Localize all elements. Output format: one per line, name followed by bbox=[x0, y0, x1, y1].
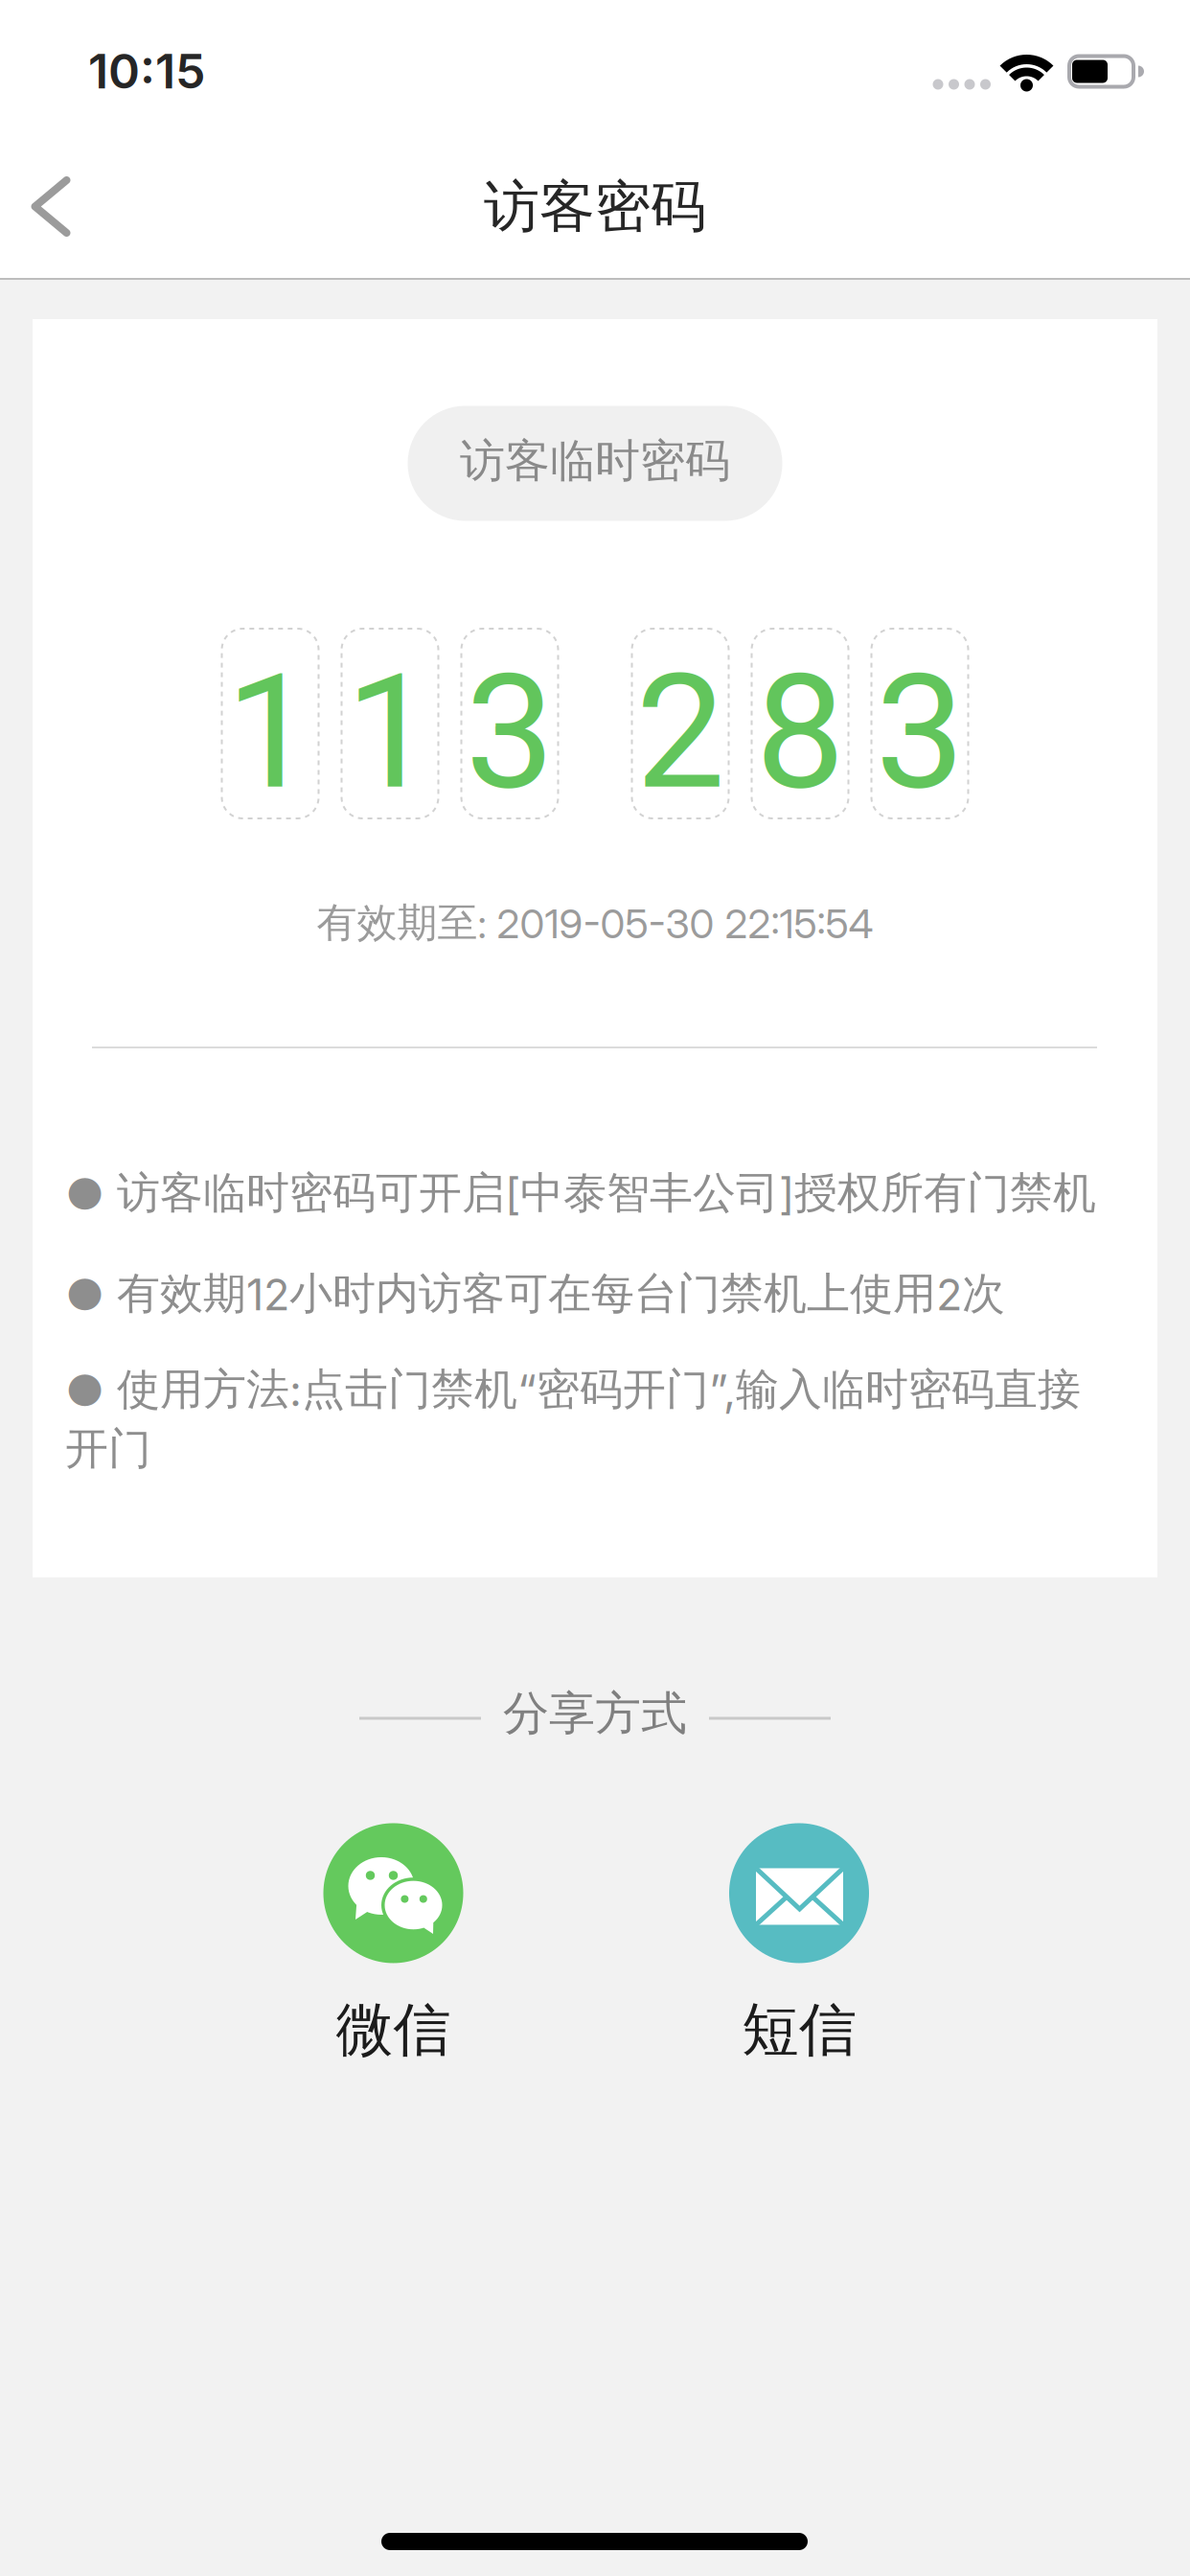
staticText: ● 使用方法:点击门禁机“密码开门”,输入临时密码直接 bbox=[65, 1362, 1081, 1417]
staticText: 3 bbox=[875, 639, 964, 825]
staticText: 有效期至: 2019-05-30 22:15:54 bbox=[317, 897, 873, 948]
staticText: 2 bbox=[636, 639, 725, 825]
staticText: 访客临时密码 bbox=[460, 433, 730, 489]
staticText: 开门 bbox=[65, 1422, 151, 1476]
staticText: 8 bbox=[755, 639, 845, 825]
staticText: ● 访客临时密码可开启[中泰智丰公司]授权所有门禁机 bbox=[65, 1166, 1096, 1220]
staticText: 短信 bbox=[742, 1994, 857, 2066]
button[interactable]: 短信 bbox=[729, 1823, 870, 2066]
button[interactable]: Back bbox=[22, 172, 98, 241]
staticText: 3 bbox=[465, 639, 554, 825]
staticText: 分享方式 bbox=[503, 1685, 687, 1743]
staticText: 1 bbox=[226, 639, 315, 825]
button[interactable]: 微信 bbox=[323, 1823, 464, 2066]
staticText: 1 bbox=[345, 639, 435, 825]
staticText: 访客密码 bbox=[484, 172, 706, 242]
staticText: ● 有效期12小时内访客可在每台门禁机上使用2次 bbox=[65, 1267, 1005, 1321]
staticText: 10:15 bbox=[88, 42, 205, 100]
staticText: 微信 bbox=[336, 1994, 451, 2066]
